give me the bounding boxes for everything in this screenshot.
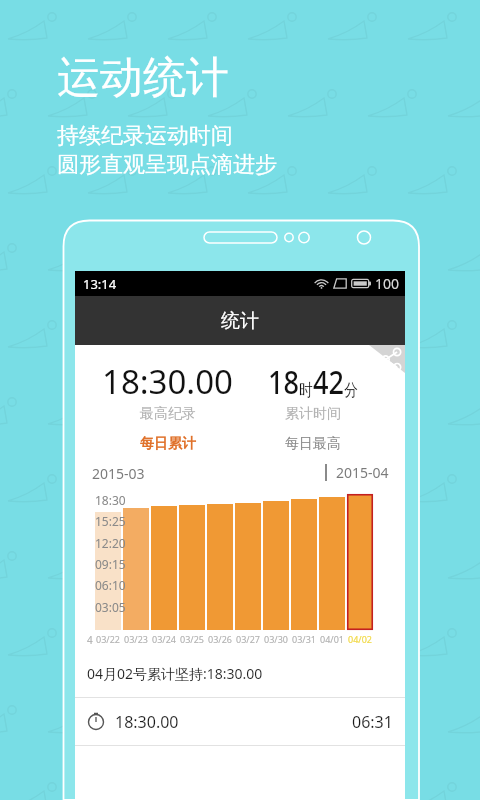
staticText: 03/25 <box>180 633 204 645</box>
staticText: 最高纪录 <box>140 405 196 423</box>
staticText: 03/26 <box>208 633 232 645</box>
staticText: 03/31 <box>292 633 316 645</box>
staticText: 04/02 <box>348 633 372 645</box>
staticText: 03/22 <box>96 633 120 645</box>
staticText: 03/27 <box>236 633 260 645</box>
staticText: 12:20 <box>95 535 126 551</box>
staticText: 18:30.00 <box>102 359 233 404</box>
staticText: 03:05 <box>95 599 126 615</box>
staticText: 13:14 <box>83 275 117 293</box>
staticText: 持续纪录运动时间 <box>57 122 233 150</box>
staticText: 04/01 <box>320 633 344 645</box>
staticText: 时 <box>299 380 313 401</box>
staticText: 圆形直观呈现点滴进步 <box>57 151 277 179</box>
staticText: 06:10 <box>95 577 126 593</box>
button[interactable]: 18 <box>240 345 385 453</box>
staticText: 03/23 <box>124 633 148 645</box>
staticText: 18:30.00 <box>115 711 179 733</box>
staticText: 2015-03 <box>92 464 145 483</box>
staticText: 06:31 <box>352 711 393 733</box>
staticText: 100 <box>375 274 400 293</box>
staticText: 统计 <box>221 309 259 333</box>
button[interactable]: 18:30.00 <box>75 698 405 745</box>
staticText: 03/30 <box>264 633 288 645</box>
staticText: 42 <box>313 359 344 404</box>
button[interactable]: Share <box>369 345 405 373</box>
staticText: 18:30 <box>95 492 126 508</box>
staticText: 每日最高 <box>285 435 341 453</box>
staticText: 18 <box>268 359 299 404</box>
button[interactable]: 18:30.00 <box>95 345 240 453</box>
staticText: 4 <box>87 633 93 647</box>
staticText: 04月02号累计坚持:18:30.00 <box>87 664 263 683</box>
staticText: 2015-04 <box>336 463 389 482</box>
staticText: 累计时间 <box>285 405 341 423</box>
button[interactable]: 统计 <box>75 296 405 345</box>
staticText: 分 <box>344 380 358 401</box>
staticText: 15:25 <box>95 513 126 529</box>
staticText: 03/24 <box>152 633 176 645</box>
staticText: 运动统计 <box>57 51 229 105</box>
staticText: 09:15 <box>95 556 126 572</box>
staticText: 每日累计 <box>140 435 196 453</box>
